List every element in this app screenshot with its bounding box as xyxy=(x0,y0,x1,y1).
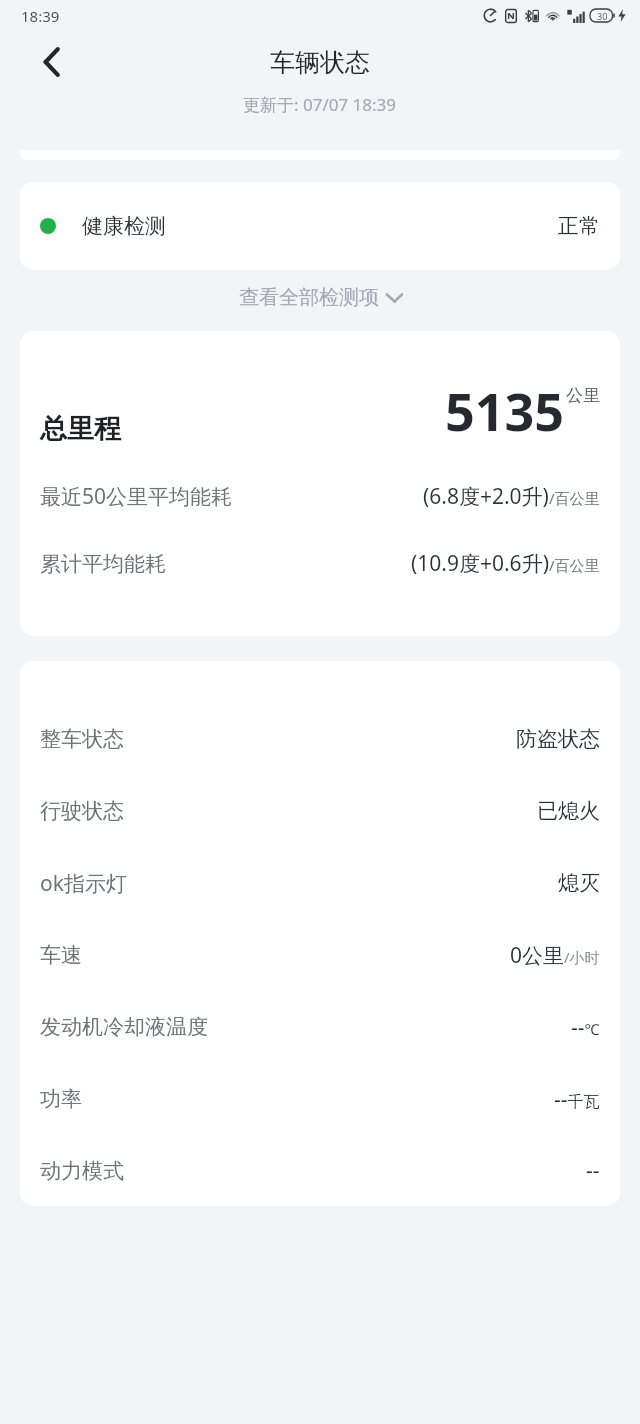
staticText: 查看全部检测项 xyxy=(239,285,379,310)
button[interactable]: ok指示灯 xyxy=(40,847,600,919)
button[interactable]: 车速 xyxy=(40,919,600,991)
staticText: 功率 xyxy=(40,1086,82,1112)
button[interactable]: Back xyxy=(30,40,74,84)
button[interactable]: 动力模式 xyxy=(40,1135,600,1206)
staticText: (6.8度+2.0升)/百公里 xyxy=(423,482,600,511)
staticText: 车辆状态 xyxy=(270,47,370,78)
button[interactable]: 功率 xyxy=(40,1063,600,1135)
staticText: (10.9度+0.6升)/百公里 xyxy=(411,549,600,578)
staticText: 公里 xyxy=(566,385,600,406)
staticText: 防盗状态 xyxy=(516,726,600,752)
staticText: 总里程 xyxy=(40,412,121,446)
staticText: 整车状态 xyxy=(40,726,124,752)
staticText: 30 xyxy=(597,10,608,22)
staticText: ok指示灯 xyxy=(40,869,127,898)
staticText: 行驶状态 xyxy=(40,798,124,824)
button[interactable]: 发动机冷却液温度 xyxy=(40,991,600,1063)
staticText: 5135 xyxy=(445,375,564,446)
staticText: -- xyxy=(586,1156,600,1185)
staticText: 0公里/小时 xyxy=(510,941,600,970)
button[interactable]: 健康检测 xyxy=(20,182,620,270)
staticText: 发动机冷却液温度 xyxy=(40,1014,208,1040)
staticText: 18:39 xyxy=(21,6,60,26)
staticText: 更新于: 07/07 18:39 xyxy=(243,93,397,116)
staticText: 健康检测 xyxy=(82,213,166,239)
staticText: 最近50公里平均能耗 xyxy=(40,482,233,511)
staticText: 累计平均能耗 xyxy=(40,551,166,577)
staticText: --℃ xyxy=(571,1013,600,1042)
button[interactable]: 行驶状态 xyxy=(40,775,600,847)
staticText: 已熄火 xyxy=(537,798,600,824)
button[interactable]: 查看全部检测项 xyxy=(229,279,412,316)
staticText: 车速 xyxy=(40,942,82,968)
staticText: --千瓦 xyxy=(554,1085,600,1114)
staticText: 正常 xyxy=(558,213,600,239)
staticText: 熄灭 xyxy=(558,870,600,896)
staticText: 动力模式 xyxy=(40,1158,124,1184)
button[interactable]: 总里程 xyxy=(20,331,620,636)
button[interactable]: 整车状态 xyxy=(40,703,600,775)
